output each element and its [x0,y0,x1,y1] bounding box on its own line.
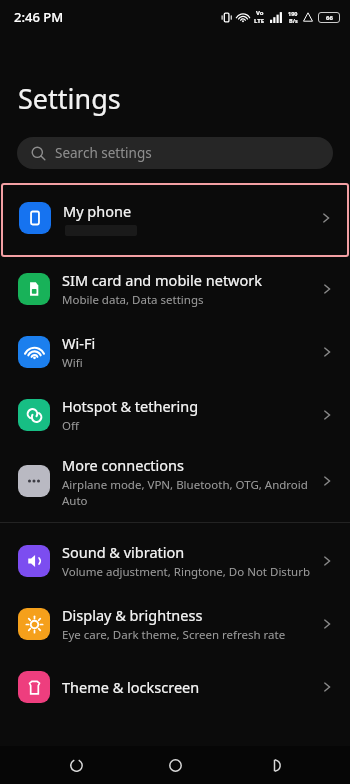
button[interactable]: My phone [1,183,349,253]
button[interactable]: Theme & lockscreen [0,655,350,718]
staticText: Settings [18,80,121,117]
staticText: 66 [326,14,333,22]
staticText: More connections [62,455,185,475]
button[interactable]: Search settings [17,137,333,169]
other: Open Sound & vibration [320,554,334,568]
button[interactable]: SIM card and mobile network [0,257,350,320]
staticText: B/s [289,17,298,24]
staticText: Off [62,418,79,434]
staticText: Search settings [55,144,152,162]
staticText: 2:46 PM [14,8,64,26]
staticText: Sound & vibration [62,542,185,562]
other: Open Theme & lockscreen [320,680,334,694]
staticText: Volume adjustment, Ringtone, Do Not Dist… [62,564,310,580]
other: Open Display & brightness [320,617,334,631]
button[interactable]: Wi-Fi [0,320,350,383]
staticText: Theme & lockscreen [62,677,200,697]
staticText: LTE [254,17,265,25]
button[interactable]: Back [53,746,99,784]
button[interactable]: Display & brightness [0,592,350,655]
staticText: Hotspot & tethering [62,396,199,416]
staticText: Wifi [62,355,83,371]
button[interactable]: Home [152,746,198,784]
staticText: Mobile data, Data settings [62,292,204,308]
staticText: My phone [63,201,132,221]
staticText: Vo [256,9,264,17]
button[interactable]: Recent apps [251,746,297,784]
other: Open More connections [320,474,334,488]
staticText: 190 [288,10,298,17]
other: Open My phone [319,211,333,225]
staticText: SIM card and mobile network [62,270,263,290]
staticText: Wi-Fi [62,333,96,353]
button[interactable]: More connections [0,446,350,516]
other: Open Wi-Fi [320,345,334,359]
button[interactable]: Sound & vibration [0,529,350,592]
staticText: Airplane mode, VPN, Bluetooth, OTG, Andr… [62,477,312,508]
button[interactable]: Hotspot & tethering [0,383,350,446]
other: Open SIM card and mobile network [320,282,334,296]
other: Open Hotspot & tethering [320,408,334,422]
staticText: Eye care, Dark theme, Screen refresh rat… [62,627,286,643]
staticText: Display & brightness [62,605,203,625]
